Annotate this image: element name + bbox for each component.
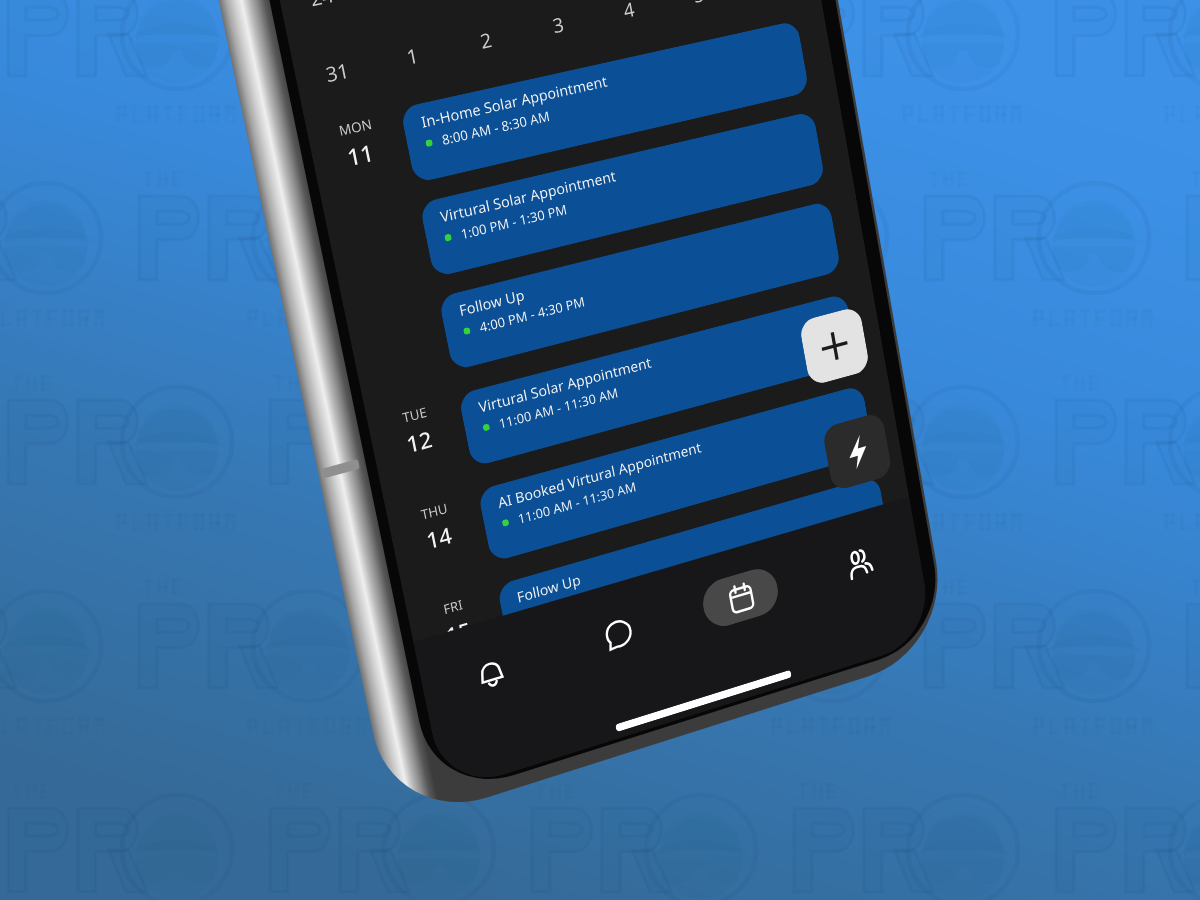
button[interactable]: Follow Up [438,200,841,371]
staticText: 11 [344,136,377,173]
button[interactable]: AI Booked Virtural Appointment [477,384,874,563]
staticText: 2:00 PM - 2:30 PM [535,575,642,622]
staticText: 5 [691,0,707,8]
button[interactable]: Messages [545,567,689,703]
staticText: Virtural Solar Appointment [477,353,653,417]
button[interactable]: Virtural Solar Appointment [458,293,858,467]
staticText: In-Home Solar Appointment [419,71,609,132]
button[interactable]: Follow Up [496,475,890,657]
staticText: 1 [404,41,422,70]
staticText: 4 [621,0,638,24]
staticText: 4:00 PM - 4:30 PM [478,292,587,337]
staticText: TUE [401,403,429,427]
button[interactable]: Quick actions [821,411,893,492]
staticText: 11:00 AM - 11:30 AM [516,478,638,528]
staticText: AI Booked Virtural Appointment [496,437,703,512]
staticText: 1:00 PM - 1:30 PM [459,200,569,243]
staticText: 31 [323,56,353,88]
staticText: MON [337,114,374,140]
button[interactable]: Calendar [670,531,809,665]
staticText: Follow Up [457,285,527,320]
staticText: 12 [404,423,436,460]
staticText: FRI [442,595,465,618]
staticText: 8:00 AM - 8:30 AM [440,107,552,149]
staticText: Virtural Solar Appointment [438,166,617,227]
staticText: 2 [478,25,495,55]
staticText: THU [419,499,450,524]
button[interactable]: Notifications [413,603,565,743]
staticText: 11:00 AM - 11:30 AM [497,384,620,433]
staticText: Follow Up [515,570,583,607]
button[interactable]: In-Home Solar Appointment [400,20,810,184]
button[interactable]: Virtural Solar Appointment [419,111,826,278]
staticText: 14 [424,519,455,556]
button[interactable]: Contacts [792,497,926,628]
staticText: 15 [443,614,475,651]
staticText: 3 [550,10,567,39]
staticText: 24 [307,0,337,12]
button[interactable]: Add appointment [798,306,870,386]
